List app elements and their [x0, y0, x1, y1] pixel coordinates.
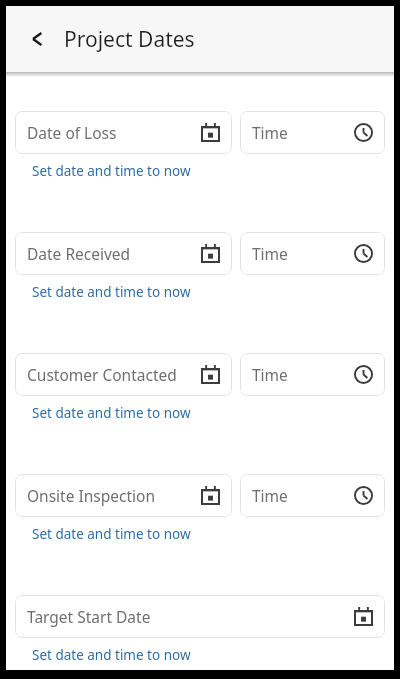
button[interactable]: Pick time — [240, 232, 385, 275]
button[interactable]: Pick time — [240, 111, 385, 154]
staticText: Time — [252, 122, 348, 143]
staticText: Time — [252, 364, 348, 385]
staticText: Set date and time to now — [32, 525, 191, 543]
button[interactable]: Back — [16, 18, 58, 60]
button[interactable]: Set date and time to now — [32, 162, 191, 180]
button[interactable]: Pick date — [15, 232, 232, 275]
button[interactable]: Pick date — [15, 111, 232, 154]
staticText: Customer Contacted — [27, 364, 195, 385]
staticText: Set date and time to now — [32, 162, 191, 180]
staticText: Set date and time to now — [32, 404, 191, 422]
staticText: Set date and time to now — [32, 646, 191, 664]
button[interactable]: Set date and time to now — [32, 283, 191, 301]
button[interactable]: Set date and time to now — [32, 404, 191, 422]
button[interactable]: Pick time — [240, 474, 385, 517]
button[interactable]: Pick date — [15, 474, 232, 517]
staticText: Date Received — [27, 243, 195, 264]
button[interactable]: Pick date — [15, 595, 385, 638]
staticText: Project Dates — [64, 25, 195, 54]
button[interactable]: Pick date — [15, 353, 232, 396]
staticText: Time — [252, 243, 348, 264]
staticText: Target Start Date — [27, 606, 348, 627]
button[interactable]: Pick time — [240, 353, 385, 396]
staticText: Onsite Inspection — [27, 485, 195, 506]
staticText: Set date and time to now — [32, 283, 191, 301]
staticText: Time — [252, 485, 348, 506]
staticText: Date of Loss — [27, 122, 195, 143]
button[interactable]: Set date and time to now — [32, 525, 191, 543]
button[interactable]: Set date and time to now — [32, 646, 191, 664]
